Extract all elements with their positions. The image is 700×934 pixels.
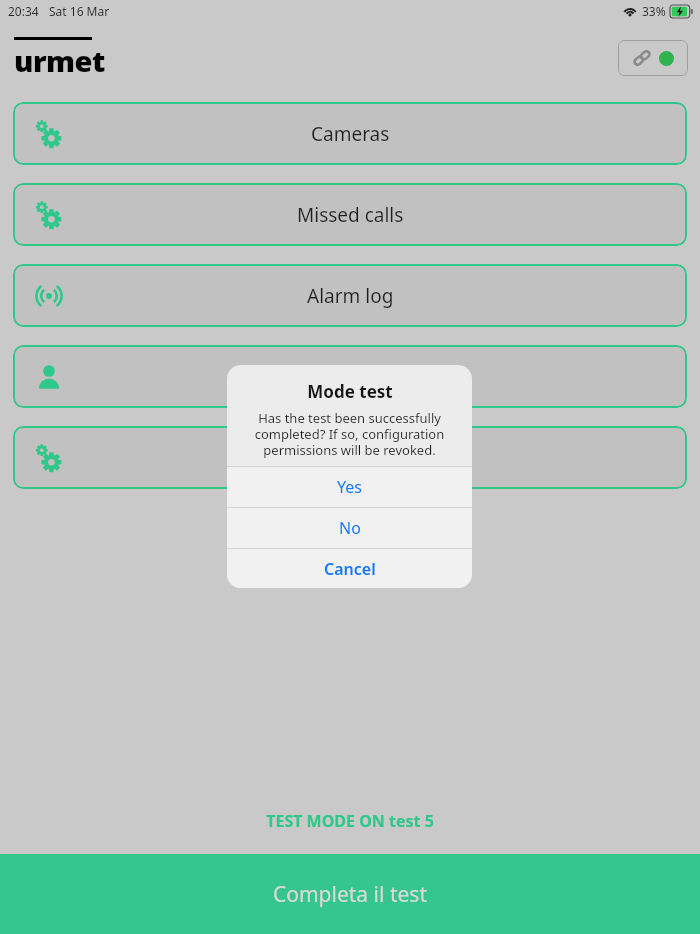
button[interactable]: Cancel	[227, 549, 472, 588]
button[interactable]: Cameras	[13, 102, 687, 165]
staticText: Cancel	[324, 558, 376, 580]
button[interactable]: Alarm log	[13, 264, 687, 327]
staticText: 33%	[642, 3, 666, 19]
button[interactable]: Completa il test	[0, 854, 700, 934]
staticText: Yes	[337, 476, 362, 498]
staticText: 20:34	[8, 3, 39, 19]
staticText: Settings	[314, 445, 387, 471]
button[interactable]: Missed calls	[13, 183, 687, 246]
staticText: Mode test	[307, 380, 393, 403]
staticText: TEST MODE ON test 5	[0, 810, 700, 832]
button[interactable]: No	[227, 508, 472, 548]
button[interactable]: Users	[13, 345, 687, 408]
staticText: Users	[325, 364, 376, 390]
staticText: Has the test been successfully completed…	[241, 409, 458, 458]
button[interactable]: Connection status	[618, 40, 688, 76]
staticText: Sat 16 Mar	[49, 3, 110, 19]
button[interactable]: Settings	[13, 426, 687, 489]
staticText: Alarm log	[307, 283, 394, 309]
staticText: urmet	[14, 41, 105, 80]
button[interactable]: Yes	[227, 467, 472, 507]
staticText: Completa il test	[273, 880, 427, 909]
staticText: No	[339, 517, 361, 539]
staticText: Cameras	[311, 121, 390, 147]
staticText: Missed calls	[297, 202, 404, 228]
